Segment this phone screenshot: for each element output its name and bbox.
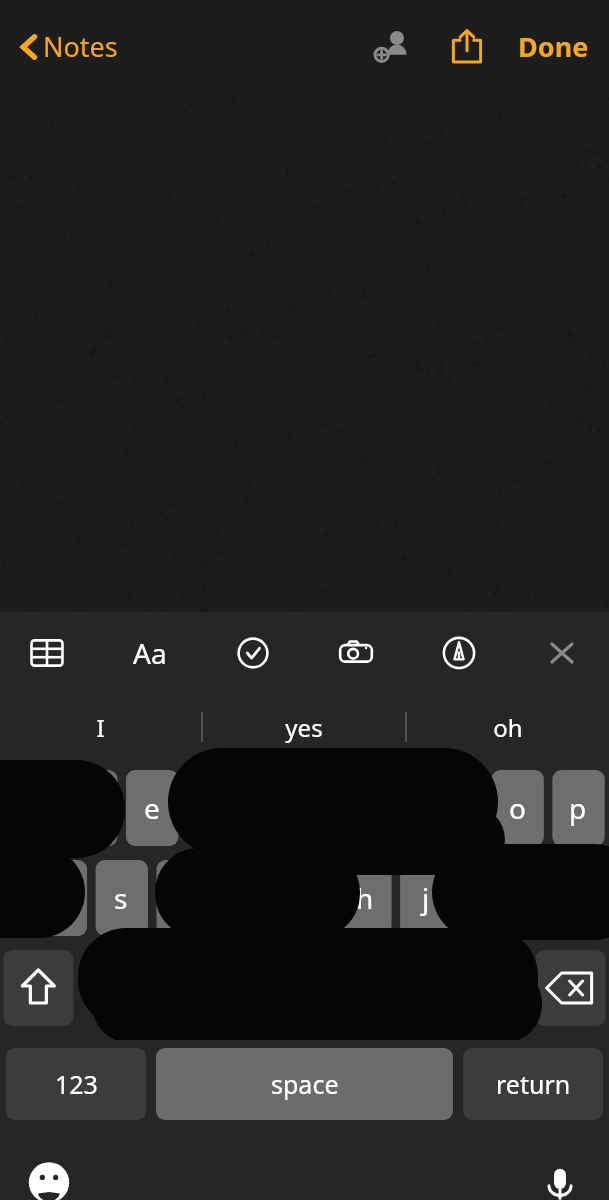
staticText: yes xyxy=(285,711,323,744)
button[interactable]: Format xyxy=(121,624,179,682)
staticText: o xyxy=(509,789,526,827)
staticText: e xyxy=(144,789,160,827)
button[interactable]: I xyxy=(0,694,201,760)
staticText: Done xyxy=(518,28,589,65)
button[interactable]: return xyxy=(463,1048,603,1120)
button[interactable]: Share xyxy=(438,17,496,75)
button[interactable]: Markup xyxy=(430,624,488,682)
button[interactable]: Done xyxy=(510,20,597,73)
button[interactable]: Camera xyxy=(327,624,385,682)
button[interactable]: Checklist xyxy=(224,624,282,682)
button[interactable]: Add people xyxy=(364,17,422,75)
staticText: return xyxy=(496,1067,571,1101)
button[interactable]: Notes xyxy=(12,20,124,73)
staticText: p xyxy=(569,789,587,827)
staticText: space xyxy=(271,1067,339,1101)
staticText: j xyxy=(422,879,430,917)
staticText: s xyxy=(114,879,128,917)
button[interactable]: Table xyxy=(18,624,76,682)
staticText: h xyxy=(356,879,374,917)
staticText: Aa xyxy=(133,634,167,672)
button[interactable]: 123 xyxy=(6,1048,146,1120)
staticText: 123 xyxy=(55,1067,98,1101)
button[interactable]: yes xyxy=(203,694,405,760)
staticText: Notes xyxy=(43,28,118,65)
button[interactable]: oh xyxy=(407,694,609,760)
button[interactable]: space xyxy=(156,1048,453,1120)
staticText: oh xyxy=(493,711,523,744)
button[interactable]: Close xyxy=(533,624,591,682)
staticText: I xyxy=(96,711,105,744)
button[interactable]: Emoji xyxy=(22,1146,76,1200)
button[interactable]: Dictate xyxy=(533,1146,587,1200)
